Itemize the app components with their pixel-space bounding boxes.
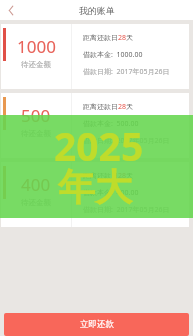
button[interactable]: 立即还款	[4, 313, 189, 336]
staticText: 我的账单	[79, 5, 115, 16]
staticText: 待还金额	[21, 198, 51, 207]
staticText: 距离还款日28天	[83, 33, 134, 43]
staticText: 距离还款日28天	[83, 102, 134, 112]
button[interactable]: 1000	[1, 24, 189, 89]
button[interactable]: 500	[1, 93, 189, 158]
staticText: 500	[21, 104, 51, 127]
staticText: 1000	[17, 35, 56, 58]
staticText: 借款日期: 2017年05月26日	[83, 136, 170, 146]
staticText: 年大	[58, 164, 132, 211]
button[interactable]: 400	[1, 162, 189, 227]
staticText: 待还金额	[21, 129, 51, 138]
staticText: 借款本金: 400.00	[83, 188, 139, 198]
staticText: 立即还款	[80, 319, 114, 330]
staticText: 2025	[54, 119, 144, 172]
staticText: 借款本金: 1000.00	[83, 50, 143, 60]
staticText: 400	[21, 173, 51, 196]
staticText: 借款日期: 2017年05月26日	[83, 67, 170, 77]
button[interactable]: Back	[0, 0, 22, 20]
staticText: 借款日期: 2017年05月26日	[83, 205, 170, 215]
staticText: 借款本金: 500.00	[83, 119, 139, 129]
staticText: 距离还款日28天	[83, 171, 134, 181]
staticText: 待还金额	[21, 60, 51, 69]
